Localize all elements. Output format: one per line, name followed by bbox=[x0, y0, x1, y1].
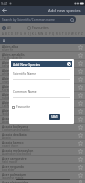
button[interactable]: Acer palmatum bbox=[0, 172, 85, 179]
button[interactable]: Favourite bbox=[77, 68, 84, 75]
button[interactable]: Favourite bbox=[77, 100, 84, 107]
staticText: Acer campestre bbox=[2, 156, 27, 160]
staticText: G bbox=[20, 32, 23, 36]
button[interactable]: Favourite bbox=[12, 105, 31, 109]
staticText: Q bbox=[52, 32, 55, 36]
staticText: W bbox=[71, 32, 74, 36]
staticText: SAVE bbox=[51, 115, 58, 119]
staticText: Favourites bbox=[32, 25, 49, 30]
staticText: H bbox=[24, 32, 27, 36]
staticText: white fir bbox=[2, 72, 14, 75]
staticText: Australian blackwood bbox=[2, 152, 32, 155]
button[interactable]: Favourite bbox=[77, 124, 84, 131]
staticText: Favourite bbox=[16, 105, 31, 109]
button[interactable]: SAVE bbox=[49, 114, 60, 120]
staticText: Add new species bbox=[48, 8, 81, 14]
button[interactable]: Acer platanoides bbox=[0, 180, 85, 183]
staticText: Abies alba bbox=[2, 44, 19, 48]
button[interactable]: Acacia karroo bbox=[0, 140, 85, 147]
staticText: Abies procera bbox=[2, 108, 24, 112]
staticText: F bbox=[17, 32, 19, 36]
button[interactable]: Abies grandis bbox=[0, 76, 85, 83]
staticText: Abies balsamea bbox=[2, 60, 27, 64]
staticText: N bbox=[41, 32, 44, 36]
staticText: Acer platanoides bbox=[2, 180, 29, 183]
button[interactable]: Abies koreana bbox=[0, 84, 85, 91]
staticText: sweet thorn bbox=[2, 144, 19, 147]
staticText: Acer negundo bbox=[2, 164, 25, 168]
button[interactable]: Abies procera bbox=[0, 108, 85, 115]
staticText: Abies lasiocarpa bbox=[2, 92, 28, 96]
staticText: D bbox=[11, 32, 14, 36]
staticText: subalpine fir bbox=[2, 96, 19, 99]
button[interactable]: Abies alba bbox=[0, 44, 85, 51]
button[interactable]: Acacia baileyana bbox=[0, 124, 85, 131]
button[interactable]: Favourite bbox=[77, 60, 84, 67]
staticText: Abies amabilis bbox=[2, 52, 25, 56]
button[interactable]: Favourite bbox=[77, 52, 84, 59]
button[interactable]: Favourite bbox=[77, 164, 84, 171]
button[interactable]: Abies concolor bbox=[0, 68, 85, 75]
staticText: S bbox=[59, 32, 61, 36]
staticText: Y bbox=[78, 32, 80, 36]
button[interactable]: Close bbox=[67, 62, 71, 66]
staticText: Acacia karroo bbox=[2, 140, 24, 144]
staticText: Abies grandis bbox=[2, 76, 24, 80]
staticText: grand fir bbox=[2, 80, 14, 83]
button[interactable]: Favourite bbox=[77, 108, 84, 115]
staticText: Scientific Name bbox=[13, 72, 37, 76]
button[interactable]: Acacia melanoxylon bbox=[0, 148, 85, 155]
staticText: A bbox=[3, 39, 6, 43]
staticText: V bbox=[68, 32, 70, 36]
staticText: C bbox=[8, 32, 10, 36]
staticText: California red fir bbox=[2, 104, 25, 107]
button[interactable]: Favourites bbox=[27, 25, 49, 30]
button[interactable]: Favourite bbox=[77, 180, 84, 183]
staticText: E bbox=[15, 32, 17, 36]
button[interactable]: Favourite bbox=[77, 140, 84, 147]
staticText: box elder bbox=[2, 168, 15, 171]
staticText: Acacia bbox=[2, 116, 13, 120]
button[interactable]: Acacia bbox=[0, 116, 85, 123]
staticText: Pacific silver fir bbox=[2, 56, 23, 59]
staticText: Add New Species bbox=[13, 62, 41, 67]
button[interactable]: Favourite bbox=[77, 132, 84, 139]
button[interactable]: Abies magnifica bbox=[0, 100, 85, 107]
button[interactable]: Favourite bbox=[77, 44, 84, 51]
staticText: Abies magnifica bbox=[2, 100, 28, 104]
staticText: Common Name bbox=[13, 90, 37, 94]
staticText: U bbox=[65, 32, 68, 36]
button[interactable]: Acer campestre bbox=[0, 156, 85, 163]
staticText: balsam fir bbox=[2, 64, 16, 67]
button[interactable]: Favourite bbox=[77, 148, 84, 155]
staticText: Japanese maple bbox=[2, 176, 24, 179]
staticText: field maple bbox=[2, 160, 18, 163]
staticText: silver fir bbox=[2, 48, 13, 51]
staticText: Abies koreana bbox=[2, 84, 25, 88]
button[interactable]: Search by Scientific/Common name bbox=[0, 16, 76, 23]
button[interactable]: Favourite bbox=[77, 172, 84, 179]
staticText: T bbox=[62, 32, 64, 36]
button[interactable]: Favourite bbox=[77, 116, 84, 123]
staticText: I bbox=[28, 32, 29, 36]
button[interactable]: Favourite bbox=[77, 84, 84, 91]
button[interactable]: All bbox=[2, 25, 11, 30]
staticText: Acacia baileyana bbox=[2, 124, 29, 128]
button[interactable]: Favourite bbox=[77, 92, 84, 99]
button[interactable]: Acacia dealbata bbox=[0, 132, 85, 139]
button[interactable]: Abies balsamea bbox=[0, 60, 85, 67]
staticText: O bbox=[45, 32, 48, 36]
button[interactable]: Favourite bbox=[77, 76, 84, 83]
staticText: 9:41 bbox=[1, 1, 8, 6]
button[interactable]: Abies lasiocarpa bbox=[0, 92, 85, 99]
button[interactable]: Back bbox=[0, 6, 9, 15]
staticText: All bbox=[7, 25, 11, 30]
staticText: Search by Scientific/Common name bbox=[2, 18, 55, 22]
staticText: Acacia bbox=[2, 120, 11, 123]
button[interactable]: Acer negundo bbox=[0, 164, 85, 171]
button[interactable]: Abies amabilis bbox=[0, 52, 85, 59]
button[interactable]: Favourite bbox=[77, 156, 84, 163]
staticText: B bbox=[5, 32, 7, 36]
staticText: P bbox=[49, 32, 51, 36]
